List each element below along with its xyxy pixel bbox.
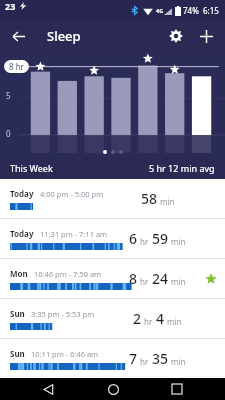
staticText: 8 hr: [9, 61, 24, 72]
button[interactable]: Back: [6, 24, 30, 48]
staticText: 6: [129, 229, 138, 248]
staticText: Today: [10, 188, 34, 199]
staticText: 11:31 pm - 7:11 am: [40, 229, 108, 239]
staticText: hr: [140, 236, 149, 247]
staticText: 74%: [183, 5, 199, 16]
staticText: Sun: [10, 308, 25, 319]
staticText: Today: [10, 228, 34, 239]
button[interactable]: Sun: [0, 299, 225, 338]
staticText: 6:15: [203, 5, 219, 16]
staticText: 5 hr 12 min avg: [149, 162, 215, 174]
staticText: 4G: [156, 7, 164, 14]
button[interactable]: Today: [0, 219, 225, 258]
staticText: 24: [152, 269, 169, 288]
staticText: 58: [141, 189, 158, 208]
staticText: 10:11 pm - 6:46 am: [31, 349, 99, 359]
staticText: 3:35 pm - 5:53 pm: [31, 309, 95, 319]
button[interactable]: Mon: [0, 259, 225, 298]
staticText: min: [171, 236, 186, 247]
staticText: Sleep: [47, 27, 81, 45]
staticText: 4: [156, 309, 165, 328]
staticText: 8: [129, 269, 138, 288]
staticText: 0: [6, 128, 11, 139]
staticText: 7: [129, 349, 138, 368]
staticText: Mon: [10, 268, 28, 279]
staticText: 4:00 pm - 5:00 pm: [40, 189, 104, 199]
staticText: Sun: [10, 348, 25, 359]
button[interactable]: Sun: [0, 339, 225, 378]
button[interactable]: This Week: [0, 157, 225, 179]
staticText: 5: [6, 90, 11, 101]
staticText: hr: [140, 276, 149, 287]
staticText: min: [160, 196, 175, 207]
button[interactable]: Settings: [163, 23, 189, 49]
staticText: 2: [133, 309, 142, 328]
staticText: 35: [152, 349, 169, 368]
button[interactable]: Recents: [160, 378, 194, 400]
staticText: 23: [5, 0, 16, 12]
button[interactable]: Add: [193, 23, 219, 49]
button[interactable]: Home: [96, 378, 130, 400]
staticText: min: [167, 316, 182, 327]
staticText: 10:46 pm - 7:50 am: [34, 269, 102, 279]
staticText: 59: [152, 229, 169, 248]
staticText: hr: [144, 316, 153, 327]
staticText: min: [171, 356, 186, 367]
staticText: hr: [140, 356, 149, 367]
button[interactable]: Back: [31, 378, 65, 400]
staticText: min: [171, 276, 186, 287]
button[interactable]: Today: [0, 179, 225, 218]
staticText: This Week: [10, 162, 53, 174]
